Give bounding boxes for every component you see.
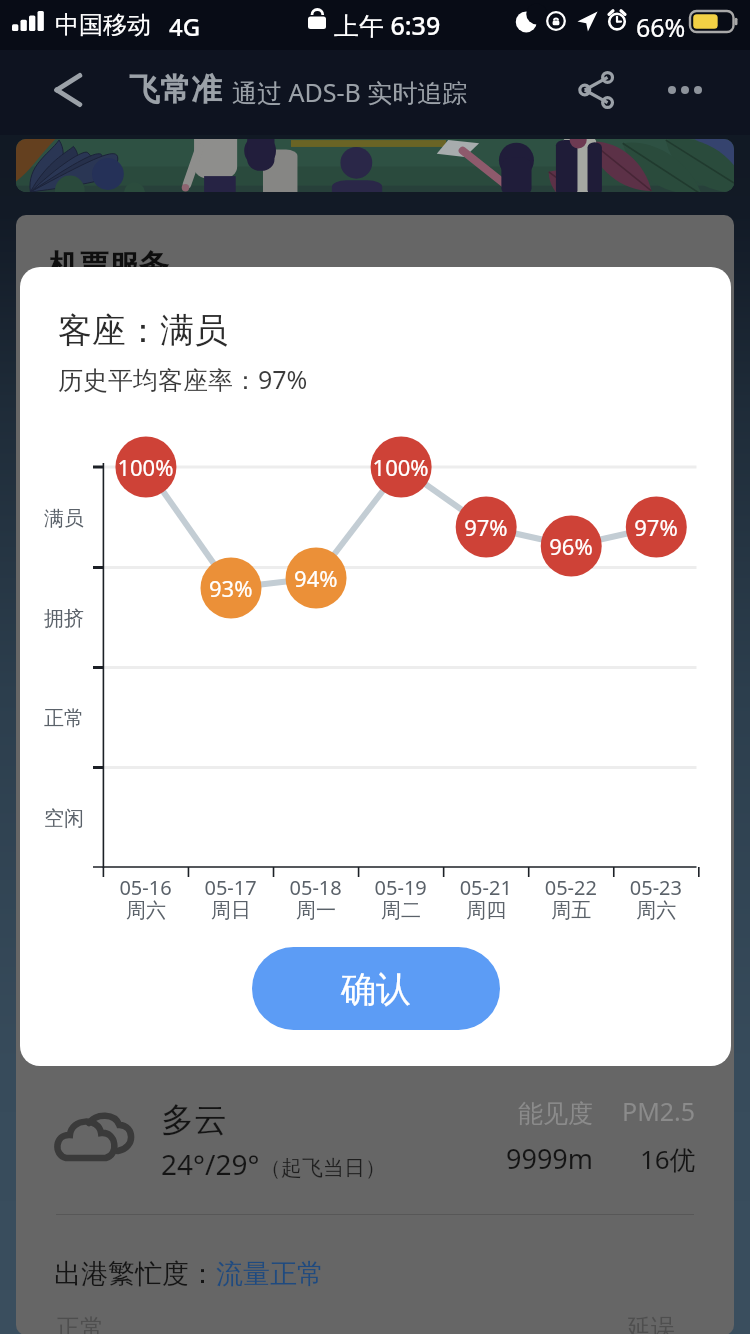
staticText: 确认 <box>341 967 411 1011</box>
staticText: 延误 <box>627 1313 675 1334</box>
button[interactable]: Share <box>568 62 624 118</box>
staticText: 中国移动 <box>55 10 151 40</box>
staticText: 客座：满员 <box>58 309 228 352</box>
staticText: 通过 ADS-B 实时追踪 <box>232 75 468 109</box>
staticText: 16优 <box>640 1141 696 1177</box>
staticText: 出港繁忙度： <box>54 1257 216 1291</box>
staticText: 机票服务 <box>49 247 169 285</box>
staticText: 9999m <box>506 1140 594 1177</box>
staticText: 66% <box>636 10 686 44</box>
button[interactable]: Back <box>42 62 94 118</box>
staticText: 历史平均客座率：97% <box>58 362 308 396</box>
staticText: 4G <box>169 10 201 43</box>
staticText: 上午 6:39 <box>334 8 441 42</box>
staticText: 正常 <box>56 1313 104 1334</box>
staticText: 24°/29° <box>161 1145 260 1183</box>
staticText: 多云 <box>161 1099 227 1141</box>
staticText: PM2.5 <box>622 1094 696 1128</box>
staticText: （起飞当日） <box>260 1155 386 1181</box>
staticText: 能见度 <box>518 1098 593 1129</box>
staticText: 飞常准 <box>129 70 222 109</box>
button[interactable]: 确认 <box>252 947 500 1030</box>
button[interactable]: More options <box>657 62 713 118</box>
staticText: 流量正常 <box>216 1257 324 1291</box>
